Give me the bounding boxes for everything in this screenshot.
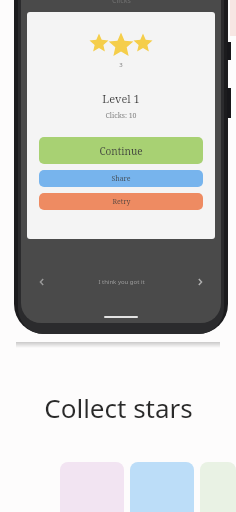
staticText: 3 [119,61,123,69]
staticText: Level 1 [102,91,140,106]
button[interactable]: Retry [39,193,203,210]
staticText: I think you got it [98,278,145,286]
button[interactable]: Previous [33,273,51,291]
staticText: Clicks [112,0,131,6]
staticText: Continue [99,144,143,158]
button[interactable] [130,462,194,512]
button[interactable]: Next [191,273,209,291]
button[interactable]: Share [39,170,203,187]
staticText: Share [111,174,131,184]
button[interactable]: Continue [39,137,203,164]
staticText: Collect stars [44,390,193,425]
staticText: Retry [112,197,131,207]
staticText: Clicks: 10 [105,111,137,121]
